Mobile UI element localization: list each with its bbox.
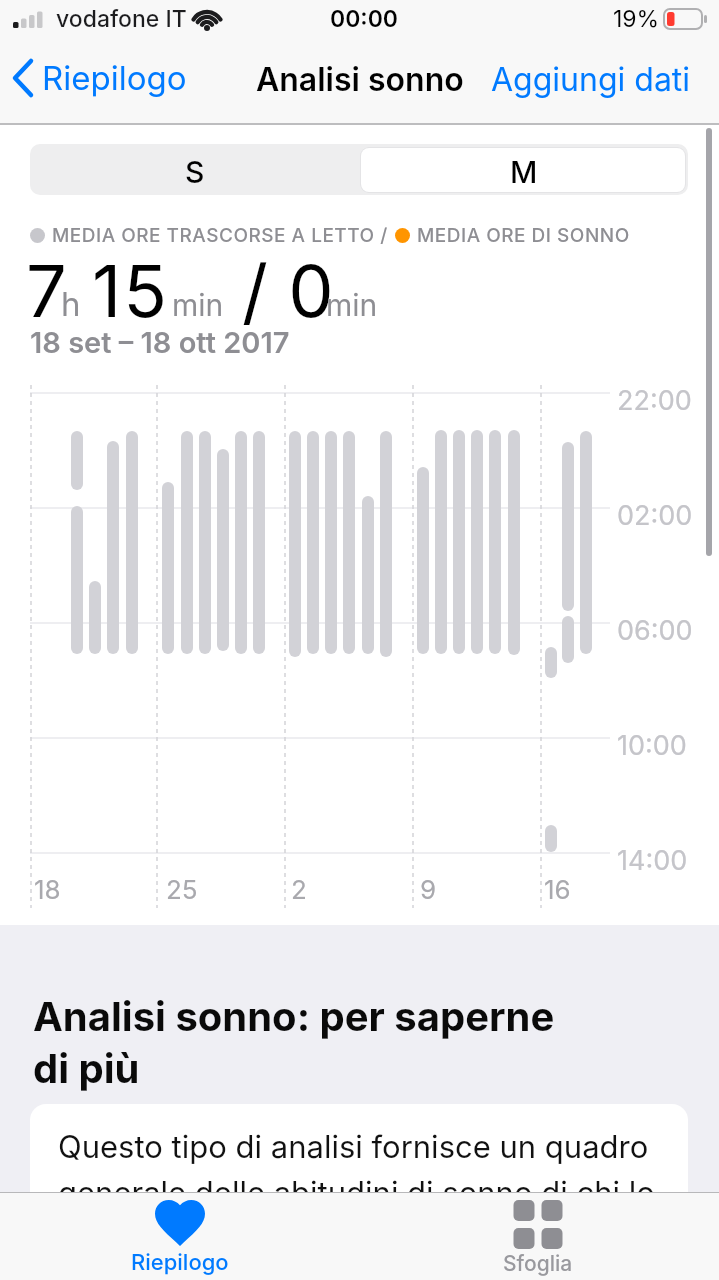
staticText: MEDIA ORE TRASCORSE A LETTO / xyxy=(52,224,388,247)
button[interactable]: Aggiungi dati xyxy=(491,60,691,99)
staticText: 25 xyxy=(166,874,198,905)
staticText: min xyxy=(326,287,378,323)
staticText: vodafone IT xyxy=(56,5,187,33)
staticText: 14:00 xyxy=(617,844,688,877)
staticText: Analisi sonno: per saperne di più xyxy=(33,992,555,1092)
staticText: 00:00 xyxy=(330,5,399,33)
staticText: 16 xyxy=(544,874,571,905)
staticText: h xyxy=(61,284,81,324)
staticText: 9 xyxy=(420,874,437,905)
staticText: 02:00 xyxy=(617,499,693,532)
staticText: M xyxy=(510,154,538,190)
button[interactable]: S xyxy=(30,144,359,195)
staticText: MEDIA ORE DI SONNO xyxy=(417,224,630,247)
staticText: Questo tipo di analisi fornisce un quadr… xyxy=(58,1128,655,1211)
staticText: min xyxy=(172,287,224,323)
staticText: 06:00 xyxy=(617,614,693,647)
staticText: / 0 xyxy=(242,247,334,334)
staticText: 7 xyxy=(26,247,67,334)
staticText: 19% xyxy=(613,5,660,33)
staticText: 22:00 xyxy=(617,384,692,417)
staticText: S xyxy=(185,154,205,190)
button[interactable]: Riepilogo xyxy=(115,1200,245,1278)
staticText: 10:00 xyxy=(617,729,687,762)
staticText: Aggiungi dati xyxy=(491,60,691,99)
staticText: 18 set – 18 ott 2017 xyxy=(30,325,290,360)
staticText: 15 xyxy=(92,247,170,334)
staticText: Sfoglia xyxy=(503,1251,573,1276)
button[interactable]: Riepilogo xyxy=(10,58,187,98)
button[interactable]: Questo tipo di analisi fornisce un quadr… xyxy=(30,1104,688,1280)
staticText: Riepilogo xyxy=(42,58,187,98)
button[interactable]: Sfoglia xyxy=(473,1200,603,1278)
staticText: Analisi sonno xyxy=(256,60,464,99)
button[interactable]: M xyxy=(359,144,688,195)
staticText: 18 xyxy=(34,874,61,905)
staticText: Riepilogo xyxy=(131,1249,229,1276)
staticText: 2 xyxy=(291,874,307,905)
